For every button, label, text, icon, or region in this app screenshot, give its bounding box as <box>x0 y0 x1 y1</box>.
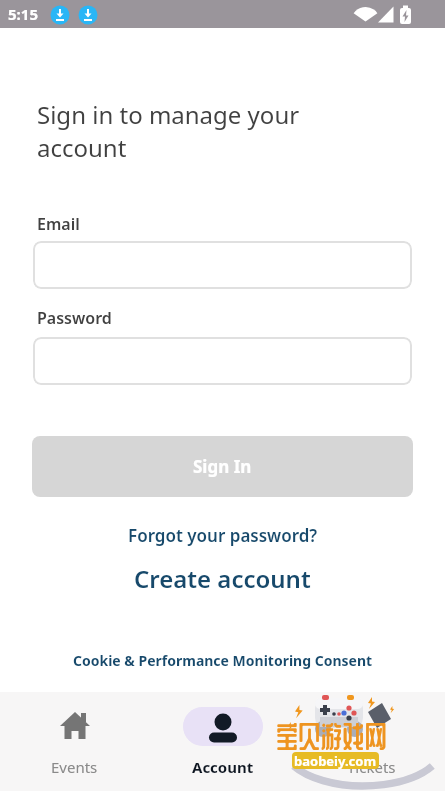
staticText: baobeiy.com <box>294 752 377 769</box>
staticText: Password <box>37 307 112 329</box>
button[interactable] <box>33 241 412 289</box>
staticText: Sign in to manage your account <box>37 98 367 164</box>
button[interactable]: Sign In <box>32 436 413 497</box>
staticText: Account <box>192 757 254 777</box>
button[interactable]: Account <box>149 692 297 791</box>
staticText: Tickets <box>347 757 396 777</box>
staticText: Sign In <box>193 455 252 478</box>
button[interactable] <box>33 337 412 385</box>
button[interactable]: Events <box>0 692 149 791</box>
staticText: 宝贝游戏网 <box>276 721 387 750</box>
staticText: Events <box>51 757 98 777</box>
button[interactable]: Forgot your password? <box>128 524 318 547</box>
button[interactable]: Tickets <box>297 692 445 791</box>
button[interactable]: Create account <box>134 562 311 595</box>
button[interactable]: Cookie & Performance Monitoring Consent <box>73 651 373 670</box>
staticText: 5:15 <box>8 4 38 24</box>
staticText: Email <box>37 213 80 235</box>
